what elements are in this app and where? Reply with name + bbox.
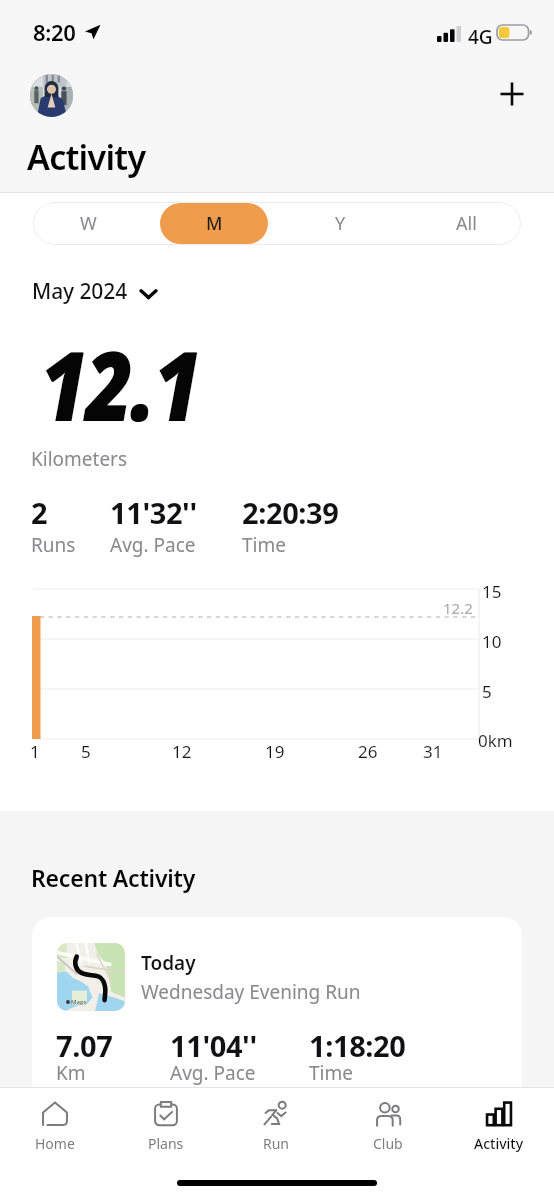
staticText: All xyxy=(456,211,477,236)
staticText: Plans xyxy=(148,1134,184,1153)
staticText: Kilometers xyxy=(31,446,128,472)
staticText: Time xyxy=(242,532,286,558)
staticText: Activity xyxy=(27,134,146,180)
staticText: 2 xyxy=(31,493,48,532)
staticText: 11'32'' xyxy=(110,493,197,532)
staticText: Y xyxy=(335,211,346,236)
staticText: 5 xyxy=(482,680,492,703)
staticText: 12.2 xyxy=(443,598,473,618)
staticText: 12 xyxy=(172,740,192,763)
button[interactable]: Profile xyxy=(30,74,73,117)
staticText: Avg. Pace xyxy=(110,532,196,558)
staticText: 8:20 xyxy=(33,17,76,47)
staticText: 31 xyxy=(423,740,443,763)
staticText: 1:18:20 xyxy=(309,1026,406,1065)
staticText: Time xyxy=(309,1060,353,1086)
staticText: 15 xyxy=(482,580,502,603)
button[interactable]: May 2024 xyxy=(32,277,158,306)
staticText: Recent Activity xyxy=(31,862,196,893)
button[interactable]: W xyxy=(34,203,142,244)
staticText: Home xyxy=(35,1134,75,1153)
button[interactable]: Club xyxy=(332,1088,443,1160)
button[interactable]: Plans xyxy=(110,1088,221,1160)
button[interactable]: Home xyxy=(0,1088,110,1160)
staticText: 1 xyxy=(30,740,40,763)
button[interactable]: All xyxy=(412,203,520,244)
staticText: 0km xyxy=(478,729,513,752)
staticText: 11'04'' xyxy=(170,1026,257,1065)
staticText: Avg. Pace xyxy=(170,1060,256,1086)
button[interactable]: Add xyxy=(490,72,534,116)
staticText: 26 xyxy=(358,740,378,763)
button[interactable]: Run xyxy=(221,1088,332,1160)
staticText: 7.07 xyxy=(56,1026,113,1065)
staticText: Activity xyxy=(474,1134,524,1153)
button[interactable]: Y xyxy=(286,203,394,244)
staticText: Club xyxy=(373,1134,403,1153)
staticText: 10 xyxy=(482,630,502,653)
staticText: 19 xyxy=(265,740,285,763)
staticText: 12.1 xyxy=(41,319,200,449)
staticText: Km xyxy=(56,1060,86,1086)
staticText: Maps xyxy=(71,998,87,1006)
staticText: M xyxy=(206,211,223,236)
staticText: 12.1 xyxy=(40,319,199,449)
staticText: May 2024 xyxy=(32,277,128,306)
staticText: 4G xyxy=(468,24,493,50)
staticText: Wednesday Evening Run xyxy=(141,979,361,1005)
button[interactable]: Maps xyxy=(32,917,522,1117)
button[interactable]: M xyxy=(160,203,268,244)
staticText: Today xyxy=(141,950,196,976)
staticText: Runs xyxy=(31,532,76,558)
staticText: 5 xyxy=(81,740,91,763)
staticText: Run xyxy=(263,1134,290,1153)
button[interactable]: Activity xyxy=(443,1088,554,1160)
staticText: W xyxy=(80,211,97,236)
staticText: 2:20:39 xyxy=(242,493,339,532)
